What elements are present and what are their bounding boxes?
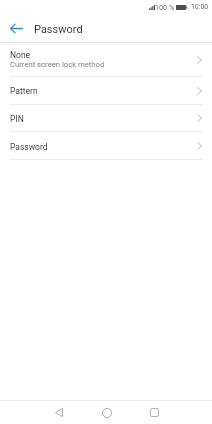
button[interactable]: Recents [142,402,166,423]
button[interactable]: None [0,43,212,77]
staticText: PIN [10,114,24,124]
button[interactable]: Back [47,402,71,423]
staticText: 10:00 [191,3,209,11]
staticText: Current screen lock method [10,60,105,69]
button[interactable]: Back [4,16,28,40]
staticText: 100 % [155,3,175,11]
staticText: None [10,50,31,60]
button[interactable]: Pattern [0,77,212,105]
button[interactable]: Password [0,132,212,160]
button[interactable]: PIN [0,104,212,132]
staticText: Password [34,23,83,36]
staticText: Password [10,142,48,152]
button[interactable]: Home [95,402,119,423]
staticText: Pattern [10,86,38,96]
